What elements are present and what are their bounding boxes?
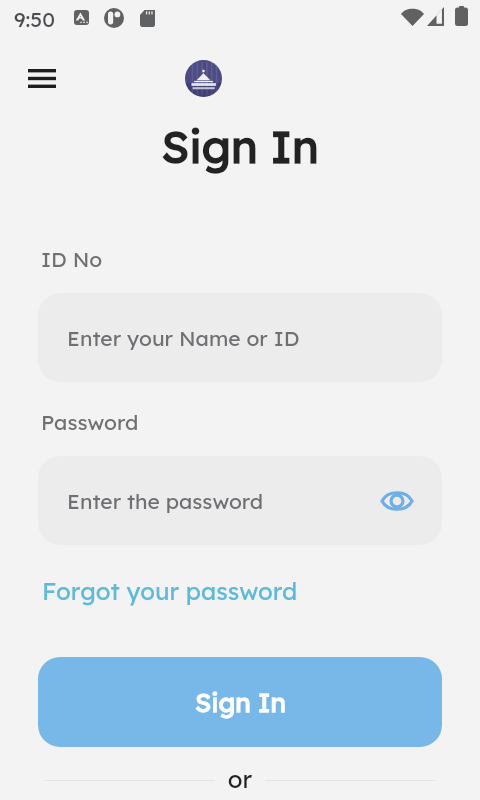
staticText: Sign In	[0, 118, 480, 174]
button[interactable]: Enter the password	[38, 456, 442, 545]
button[interactable]: Forgot your password	[38, 574, 302, 608]
button[interactable]: Show password	[380, 484, 414, 518]
staticText: Password	[41, 409, 139, 435]
button[interactable]: Enter your Name or ID	[38, 293, 442, 382]
staticText: Enter the password	[67, 488, 264, 514]
staticText: Sign In	[195, 686, 286, 719]
staticText: Enter your Name or ID	[67, 325, 300, 351]
staticText: Forgot your password	[42, 576, 298, 606]
staticText: or	[0, 764, 480, 794]
button[interactable]: Sign In	[38, 657, 442, 747]
staticText: ID No	[41, 246, 103, 272]
staticText: 9:50	[14, 6, 56, 32]
button[interactable]: Menu	[18, 54, 66, 102]
